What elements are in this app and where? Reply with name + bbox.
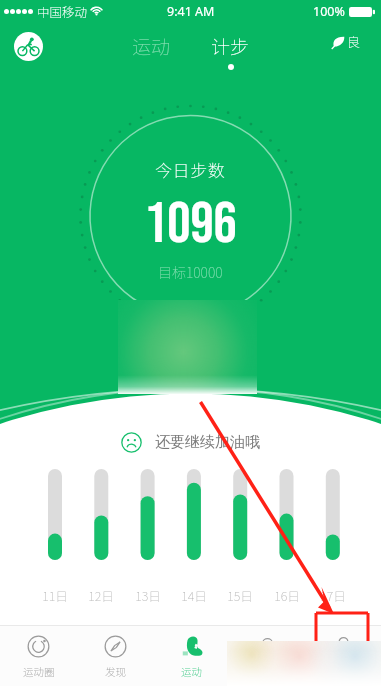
staticText: 9:41 AM	[167, 3, 215, 20]
button[interactable]: 良	[331, 30, 361, 53]
staticText: 100%	[313, 3, 345, 20]
staticText: 良	[347, 32, 361, 51]
staticText: 16日	[269, 586, 305, 604]
button[interactable]: 运动圈	[0, 626, 77, 686]
staticText: 1096	[144, 190, 237, 260]
staticText: 商城	[257, 664, 278, 679]
staticText: 运动	[181, 664, 202, 679]
staticText: 11日	[37, 586, 73, 604]
staticText: 17日	[315, 586, 351, 604]
staticText: 14日	[176, 586, 212, 604]
staticText: 运动圈	[23, 664, 55, 679]
staticText: 中国移动	[37, 2, 88, 20]
staticText: 13日	[130, 586, 166, 604]
staticText: 我的	[333, 664, 354, 679]
button[interactable]: 运动	[153, 626, 229, 686]
button[interactable]: Cycling	[14, 32, 43, 61]
staticText: 运动	[132, 32, 171, 60]
staticText: 计步	[211, 32, 250, 60]
staticText: 15日	[222, 586, 258, 604]
staticText: 今日步数	[155, 157, 226, 182]
staticText: 12日	[83, 586, 119, 604]
staticText: 目标10000	[158, 262, 223, 282]
button[interactable]: 发现	[77, 626, 153, 686]
button[interactable]: 我的	[305, 626, 381, 686]
staticText: 还要继续加油哦	[155, 433, 260, 452]
staticText: 发现	[105, 664, 126, 679]
button[interactable]: 商城	[229, 626, 305, 686]
button[interactable]: 运动	[126, 30, 177, 62]
button[interactable]: 计步	[205, 30, 256, 72]
